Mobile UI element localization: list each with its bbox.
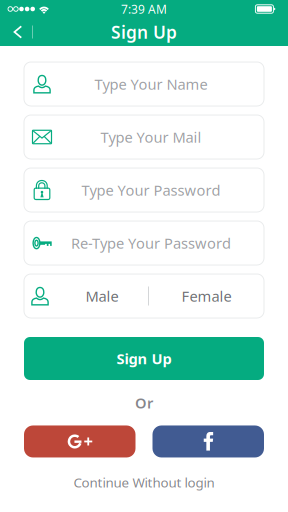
staticText: Re-Type Your Password	[71, 233, 231, 253]
staticText: Female	[181, 286, 231, 306]
button[interactable]: Sign up with Facebook	[152, 425, 264, 457]
button[interactable]: Female	[149, 274, 264, 318]
button[interactable]: Continue Without login	[73, 473, 214, 491]
staticText: Type Your Mail	[100, 127, 201, 147]
staticText: Sign Up	[111, 20, 177, 43]
staticText: Or	[135, 393, 153, 412]
button[interactable]: Male	[56, 274, 148, 318]
button[interactable]: Back	[4, 18, 32, 46]
staticText: 7:39 AM	[121, 1, 167, 17]
button[interactable]: Sign up with Google	[24, 425, 135, 457]
button[interactable]: Type Your Mail	[24, 115, 264, 159]
staticText: Continue Without login	[73, 473, 214, 491]
button[interactable]: Sign Up	[24, 337, 264, 380]
staticText: Type Your Name	[94, 74, 207, 94]
staticText: Type Your Password	[81, 180, 220, 200]
staticText: Sign Up	[116, 349, 171, 368]
button[interactable]: Type Your Password	[24, 168, 264, 212]
button[interactable]: Re-Type Your Password	[24, 221, 264, 265]
button[interactable]: Type Your Name	[24, 62, 264, 106]
staticText: Male	[85, 286, 118, 306]
